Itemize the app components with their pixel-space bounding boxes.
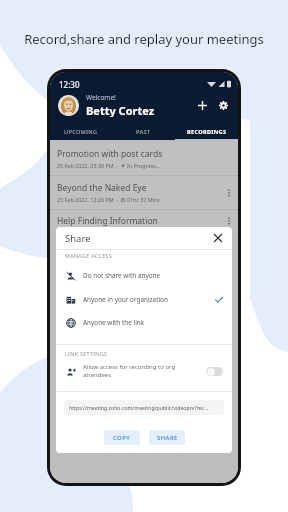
button[interactable]: Settings: [215, 97, 232, 114]
staticText: LINK SETTINGS: [65, 350, 108, 357]
button[interactable]: UPCOMING: [50, 128, 112, 140]
staticText: COPY: [113, 434, 131, 442]
button[interactable]: More options: [223, 187, 235, 199]
staticText: Anyone with the link: [83, 318, 223, 327]
staticText: In Progress...: [127, 162, 161, 169]
button[interactable]: Anyone with the link: [56, 312, 232, 333]
staticText: 12:30: [59, 79, 80, 88]
button[interactable]: More options: [223, 215, 235, 227]
staticText: RECORDINGS: [187, 128, 227, 136]
staticText: Share: [65, 232, 91, 245]
button[interactable]: Beyond the Naked Eye: [50, 176, 238, 209]
staticText: 25 Feb 2022, 12:26 PM -: [57, 196, 121, 203]
staticText: Anyone in your organization: [83, 295, 215, 304]
button[interactable]: Add meeting: [194, 97, 211, 114]
button[interactable]: Do not share with anyone: [56, 265, 232, 286]
button[interactable]: RECORDINGS: [175, 128, 238, 140]
button[interactable]: PAST: [112, 128, 175, 140]
button[interactable]: COPY: [104, 430, 140, 445]
staticText: 25 Feb 2022, 05:30 PM -: [57, 162, 121, 169]
button[interactable]: Anyone in your organization: [56, 289, 232, 310]
staticText: Betty Cortez: [86, 103, 155, 117]
staticText: PAST: [136, 128, 151, 136]
button[interactable]: Help Finding Information: [50, 210, 238, 232]
staticText: Help Finding Information: [57, 215, 223, 227]
staticText: SHARE: [157, 434, 178, 442]
staticText: Allow access for recording to org attend…: [83, 363, 201, 379]
button[interactable]: Profile photo: [58, 95, 79, 116]
staticText: MANAGE ACCESS: [65, 252, 112, 259]
staticText: Beyond the Naked Eye: [57, 182, 147, 194]
staticText: 01hr 32 Mins: [127, 196, 160, 203]
staticText: Record,share and replay your meetings: [0, 30, 288, 48]
staticText: UPCOMING: [64, 128, 98, 136]
staticText: Do not share with anyone: [83, 271, 223, 280]
staticText: https://meeting.zoho.com/meeting/public/…: [69, 404, 209, 411]
button[interactable]: Promotion with post cards: [50, 142, 238, 175]
staticText: Welcome!: [86, 93, 116, 102]
button[interactable]: Allow access toggle: [206, 367, 223, 376]
button[interactable]: Close: [211, 231, 225, 245]
button[interactable]: Allow access for recording to org attend…: [56, 360, 232, 382]
button[interactable]: SHARE: [149, 430, 185, 445]
staticText: Promotion with post cards: [57, 148, 163, 160]
